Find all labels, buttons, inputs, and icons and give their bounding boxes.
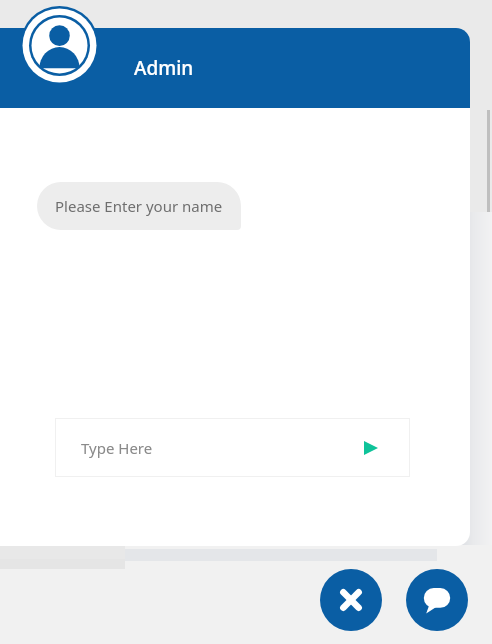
staticText: Please Enter your name <box>55 196 223 216</box>
staticText: Type Here <box>81 438 358 458</box>
button[interactable]: Profile <box>20 6 99 85</box>
button[interactable]: Close chat <box>320 569 382 631</box>
staticText: Admin <box>134 55 194 81</box>
button[interactable]: Type Here <box>55 418 410 477</box>
button[interactable]: Open chat <box>406 569 468 631</box>
button[interactable]: Send <box>358 435 384 461</box>
button[interactable]: Please Enter your name <box>37 182 241 230</box>
